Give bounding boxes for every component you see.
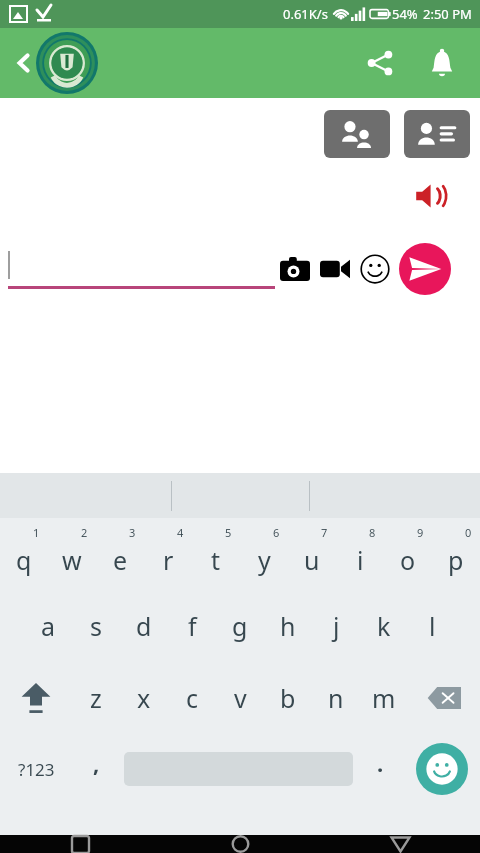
staticText: n bbox=[328, 681, 344, 715]
button[interactable]: d bbox=[120, 590, 168, 662]
button[interactable]: 5 bbox=[192, 518, 240, 590]
button[interactable]: c bbox=[168, 662, 216, 734]
staticText: c bbox=[186, 681, 199, 715]
staticText: i bbox=[357, 543, 364, 577]
button[interactable]: x bbox=[120, 662, 168, 734]
button[interactable]: Emoji bbox=[355, 249, 395, 289]
button[interactable]: 9 bbox=[384, 518, 432, 590]
staticText: k bbox=[377, 609, 391, 643]
staticText: u bbox=[304, 543, 320, 577]
button[interactable]: ?123 bbox=[0, 734, 73, 804]
button[interactable]: Backspace bbox=[408, 662, 480, 734]
button[interactable]: Home bbox=[160, 835, 320, 853]
button[interactable]: 8 bbox=[336, 518, 384, 590]
staticText: l bbox=[429, 609, 436, 643]
staticText: b bbox=[280, 681, 296, 715]
staticText: 8 bbox=[369, 525, 376, 540]
button[interactable]: j bbox=[312, 590, 360, 662]
button[interactable]: 6 bbox=[240, 518, 288, 590]
staticText: r bbox=[163, 543, 174, 577]
button[interactable]: v bbox=[216, 662, 264, 734]
button[interactable]: n bbox=[312, 662, 360, 734]
staticText: o bbox=[400, 543, 416, 577]
staticText: 0 bbox=[465, 525, 472, 540]
staticText: 54% bbox=[392, 5, 418, 23]
staticText: d bbox=[136, 609, 152, 643]
button[interactable]: h bbox=[264, 590, 312, 662]
button[interactable]: 2 bbox=[48, 518, 96, 590]
button[interactable]: 7 bbox=[288, 518, 336, 590]
button[interactable]: . bbox=[357, 734, 403, 804]
button[interactable]: Shift bbox=[0, 662, 72, 734]
button[interactable]: Organisation logo bbox=[36, 32, 98, 94]
button[interactable]: 3 bbox=[96, 518, 144, 590]
staticText: , bbox=[93, 748, 100, 778]
staticText: s bbox=[90, 609, 102, 643]
staticText: 2 bbox=[81, 525, 88, 540]
button[interactable]: Back bbox=[320, 835, 480, 853]
staticText: p bbox=[448, 543, 464, 577]
button[interactable]: l bbox=[408, 590, 456, 662]
button[interactable]: Share bbox=[356, 39, 404, 87]
staticText: h bbox=[280, 609, 296, 643]
button[interactable]: Send bbox=[399, 243, 451, 295]
button[interactable]: Play audio bbox=[408, 174, 452, 218]
button[interactable]: Back bbox=[4, 43, 44, 83]
button[interactable]: , bbox=[73, 734, 120, 804]
button[interactable]: Video bbox=[315, 249, 355, 289]
button[interactable]: g bbox=[216, 590, 264, 662]
staticText: x bbox=[137, 681, 151, 715]
staticText: ?123 bbox=[18, 758, 55, 781]
button[interactable]: a bbox=[24, 590, 72, 662]
staticText: w bbox=[62, 543, 82, 577]
staticText: f bbox=[188, 609, 197, 643]
button[interactable]: 1 bbox=[0, 518, 48, 590]
button[interactable]: Camera bbox=[275, 249, 315, 289]
staticText: 5 bbox=[225, 525, 232, 540]
staticText: y bbox=[258, 543, 271, 577]
button[interactable]: 4 bbox=[144, 518, 192, 590]
staticText: j bbox=[333, 609, 340, 643]
staticText: 2:50 PM bbox=[423, 5, 472, 23]
staticText: 7 bbox=[321, 525, 328, 540]
button[interactable]: b bbox=[264, 662, 312, 734]
button[interactable]: k bbox=[360, 590, 408, 662]
button[interactable]: Group members bbox=[324, 110, 390, 158]
button[interactable] bbox=[0, 245, 275, 293]
button[interactable]: Emoji keyboard bbox=[403, 734, 480, 804]
staticText: 4 bbox=[177, 525, 184, 540]
button[interactable]: Recents bbox=[0, 835, 160, 853]
button[interactable]: f bbox=[168, 590, 216, 662]
button[interactable]: Notifications bbox=[418, 39, 466, 87]
button[interactable]: 0 bbox=[432, 518, 480, 590]
staticText: 0.61K/s bbox=[283, 5, 328, 23]
staticText: a bbox=[41, 609, 56, 643]
staticText: . bbox=[377, 748, 384, 778]
staticText: t bbox=[211, 543, 221, 577]
button[interactable]: z bbox=[72, 662, 120, 734]
staticText: 3 bbox=[129, 525, 136, 540]
staticText: 1 bbox=[33, 525, 40, 540]
staticText: m bbox=[372, 681, 396, 715]
staticText: v bbox=[234, 681, 247, 715]
staticText: e bbox=[113, 543, 128, 577]
button[interactable]: s bbox=[72, 590, 120, 662]
staticText: g bbox=[232, 609, 248, 643]
staticText: z bbox=[90, 681, 102, 715]
button[interactable]: Contact details bbox=[404, 110, 470, 158]
button[interactable]: m bbox=[360, 662, 408, 734]
staticText: q bbox=[16, 543, 32, 577]
staticText: 9 bbox=[417, 525, 424, 540]
staticText: 6 bbox=[273, 525, 280, 540]
